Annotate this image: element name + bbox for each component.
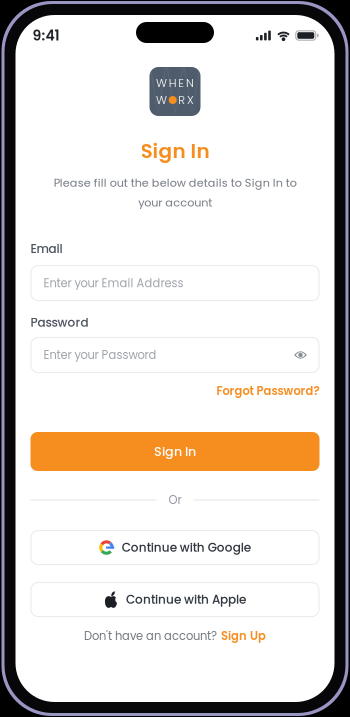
staticText: Don't have an account? xyxy=(84,628,217,644)
staticText: R xyxy=(178,92,185,108)
staticText: N xyxy=(186,75,194,91)
button[interactable]: Sign In xyxy=(30,432,319,471)
staticText: Sign Up xyxy=(221,628,266,644)
staticText: E xyxy=(178,75,184,91)
staticText: Please fill out the below details to Sig… xyxy=(53,175,296,210)
staticText: Or xyxy=(168,492,181,508)
staticText: Forgot Password? xyxy=(216,383,319,399)
staticText: W xyxy=(156,75,167,91)
button[interactable]: Forgot Password? xyxy=(216,383,319,399)
staticText: 9:41 xyxy=(32,26,59,45)
button[interactable]: Continue with Google xyxy=(30,530,319,565)
staticText: W xyxy=(156,92,167,108)
staticText: Enter your Email Address xyxy=(43,275,183,291)
button[interactable]: Don't have an account? xyxy=(84,628,266,644)
staticText: Continue with Google xyxy=(122,539,251,556)
staticText: Enter your Password xyxy=(43,347,156,363)
staticText: Password xyxy=(30,314,88,331)
staticText: Sign In xyxy=(154,443,196,460)
staticText: Email xyxy=(30,240,62,257)
button[interactable]: Continue with Apple xyxy=(30,582,319,617)
staticText: Continue with Apple xyxy=(126,591,246,608)
staticText: Sign In xyxy=(140,137,209,165)
staticText: X xyxy=(187,92,194,108)
staticText: H xyxy=(169,75,177,91)
